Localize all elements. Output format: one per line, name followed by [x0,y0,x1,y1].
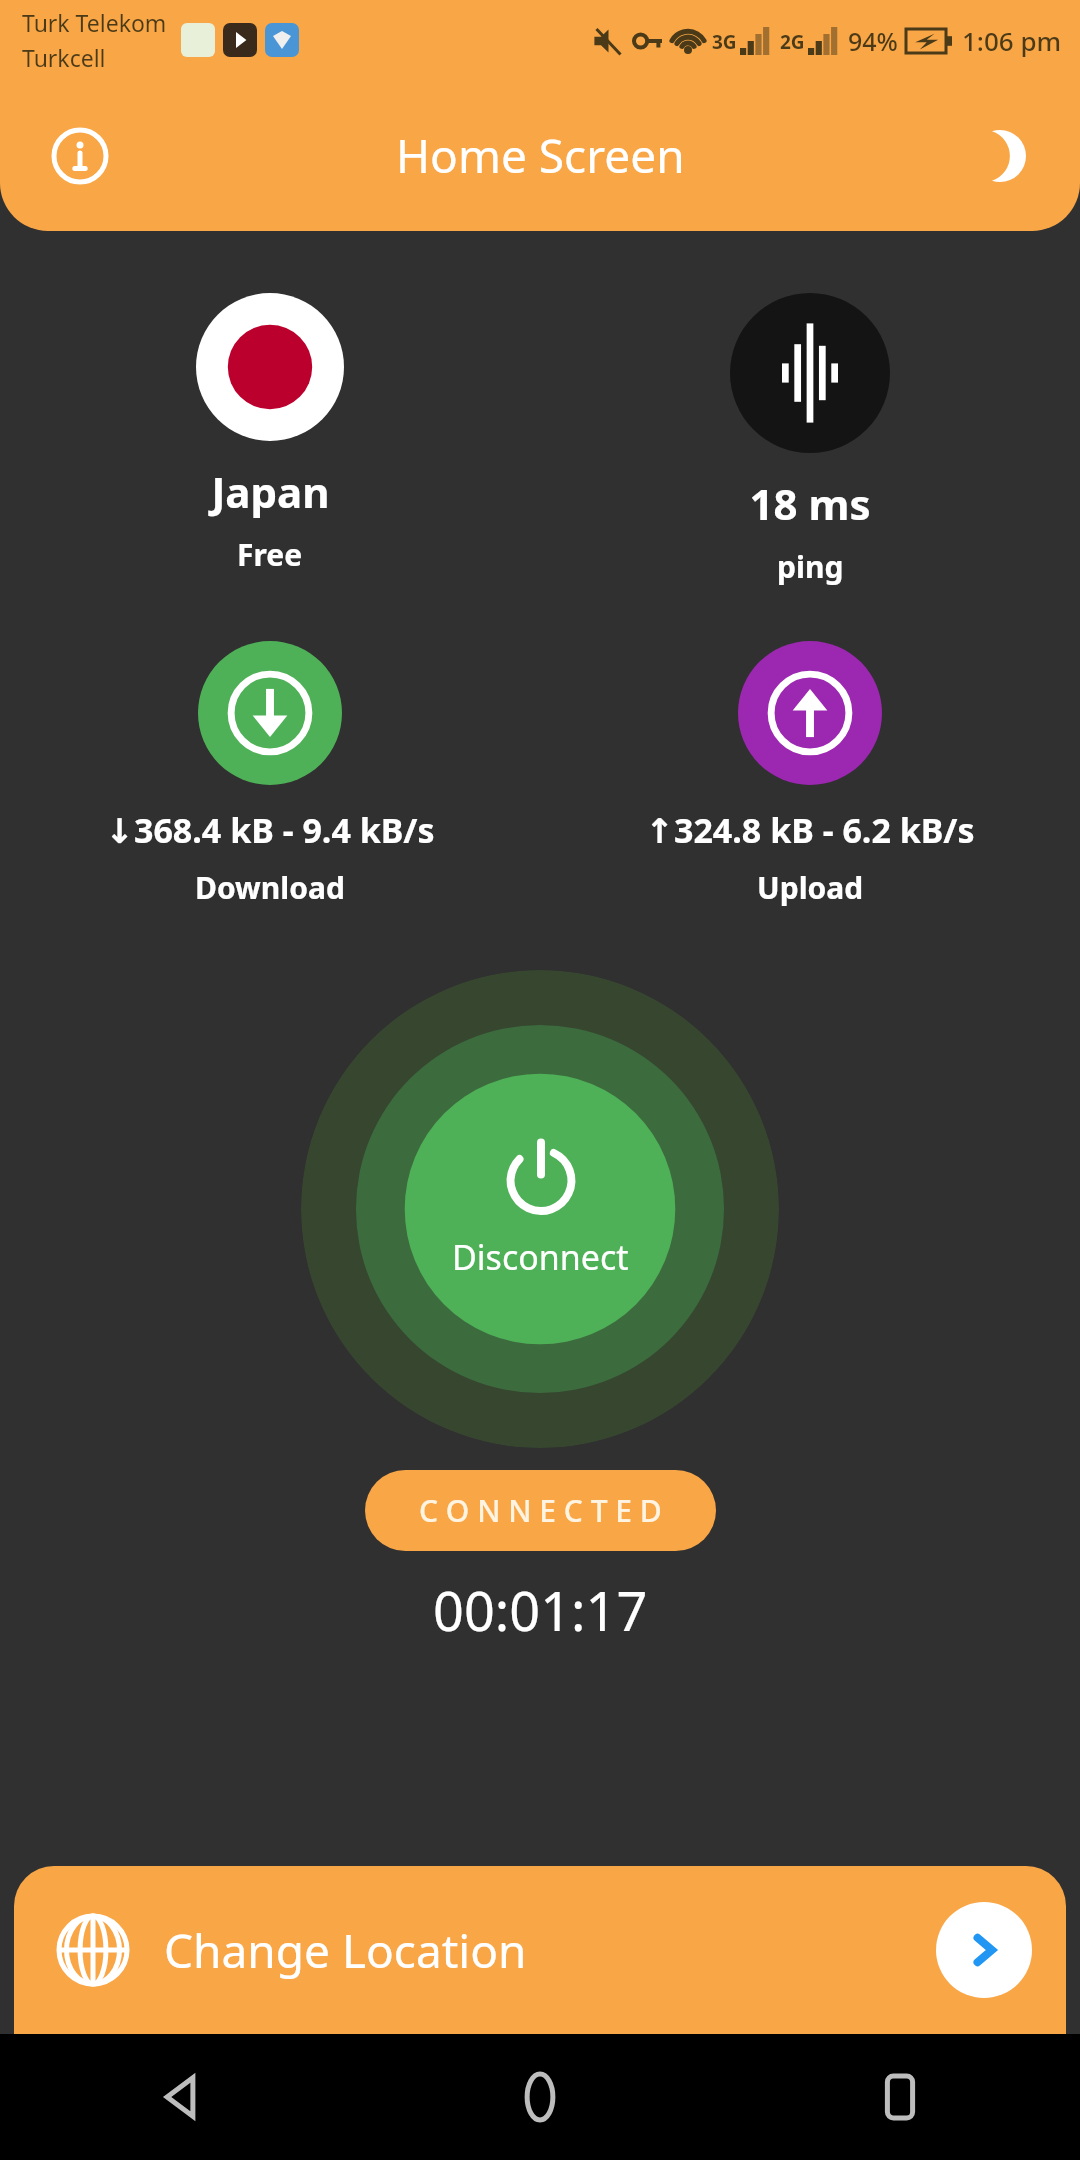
staticText: Free [237,534,303,575]
staticText: Disconnect [452,1234,629,1280]
button[interactable]: C O N N E C T E D [365,1470,716,1551]
staticText: Turk Telekom [22,7,167,38]
button[interactable]: Info [36,112,124,200]
staticText: 3G [712,29,737,55]
staticText: 94% [848,24,898,58]
staticText: 2G [780,29,805,55]
button[interactable]: 18 ms [540,293,1080,587]
staticText: Japan [211,463,330,520]
staticText: Home Screen [396,124,685,187]
button[interactable]: Change Location [14,1866,1066,2034]
staticText: ping [777,546,844,587]
button[interactable]: Recents [720,2034,1080,2160]
staticText: ↑324.8 kB - 6.2 kB/s [645,807,975,853]
staticText: 00:01:17 [433,1573,648,1647]
button[interactable]: Home [360,2034,720,2160]
button[interactable]: ↓368.4 kB - 9.4 kB/s [0,641,540,908]
button[interactable]: Night mode [956,112,1044,200]
staticText: Change Location [164,1919,527,1982]
staticText: C O N N E C T E D [419,1490,662,1531]
staticText: Upload [757,867,864,908]
button[interactable]: ↑324.8 kB - 6.2 kB/s [540,641,1080,908]
button[interactable]: Japan [0,293,540,575]
staticText: Download [195,867,345,908]
staticText: ↓368.4 kB - 9.4 kB/s [105,807,435,853]
staticText: Turkcell [22,42,106,73]
staticText: 18 ms [749,475,871,532]
button[interactable]: Disconnect [301,970,779,1448]
staticText: 1:06 pm [962,23,1062,58]
button[interactable]: Back [0,2034,360,2160]
